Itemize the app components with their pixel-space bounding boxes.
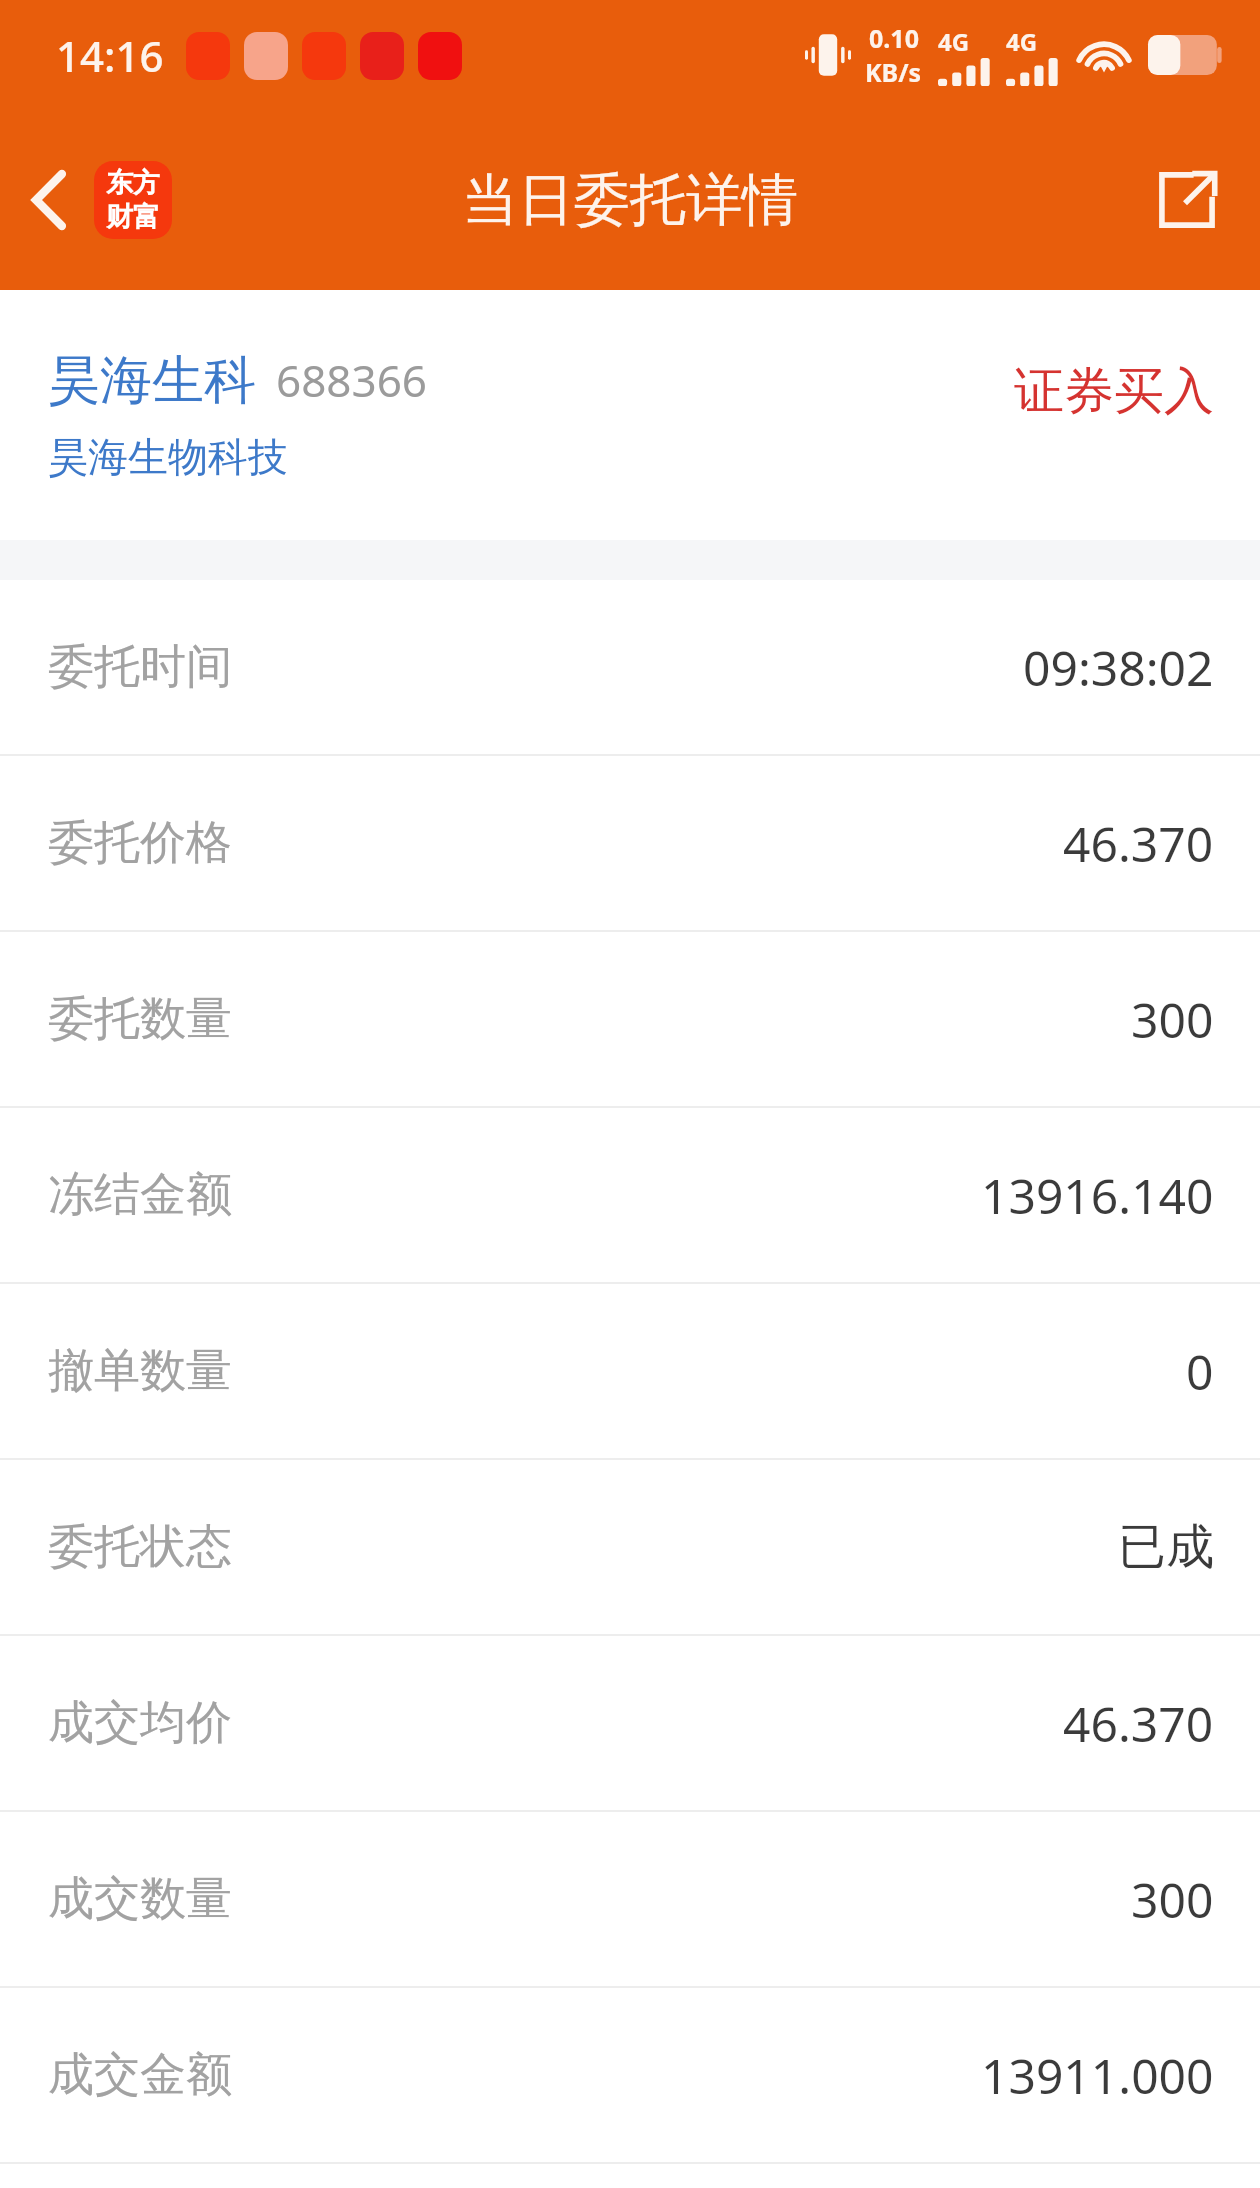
- staticText: 昊海生科: [48, 348, 256, 414]
- button[interactable]: Back: [0, 137, 190, 263]
- staticText: 09:38:02: [1023, 635, 1214, 700]
- staticText: 委托状态: [48, 1518, 232, 1576]
- staticText: 成交金额: [48, 2046, 232, 2104]
- staticText: 46.370: [1063, 1691, 1214, 1756]
- button[interactable]: 成交均价: [0, 1636, 1260, 1810]
- staticText: 4G: [1006, 25, 1038, 58]
- staticText: 撤单数量: [48, 1342, 232, 1400]
- staticText: 当日委托详情: [462, 165, 798, 236]
- button[interactable]: 冻结金额: [0, 1108, 1260, 1282]
- staticText: 证券买入: [1014, 360, 1214, 423]
- button[interactable]: Share: [1128, 141, 1260, 259]
- staticText: KB/s: [865, 55, 922, 89]
- button[interactable]: 委托时间: [0, 580, 1260, 754]
- staticText: 13911.000: [981, 2043, 1214, 2108]
- staticText: 300: [1131, 1867, 1214, 1932]
- staticText: 委托时间: [48, 638, 232, 696]
- staticText: 成交均价: [48, 1694, 232, 1752]
- staticText: 13916.140: [981, 1163, 1214, 1228]
- staticText: 已成: [1118, 1517, 1214, 1577]
- button[interactable]: 撤单数量: [0, 1284, 1260, 1458]
- staticText: 成交数量: [48, 1870, 232, 1928]
- staticText: 14:16: [56, 27, 164, 84]
- button[interactable]: 委托状态: [0, 1460, 1260, 1634]
- button[interactable]: 委托数量: [0, 932, 1260, 1106]
- staticText: 0: [1186, 1339, 1214, 1404]
- button[interactable]: 委托价格: [0, 756, 1260, 930]
- staticText: 昊海生物科技: [48, 432, 288, 482]
- button[interactable]: 成交金额: [0, 1988, 1260, 2162]
- button[interactable]: 成交数量: [0, 1812, 1260, 1986]
- button[interactable]: 昊海生科: [0, 290, 1260, 540]
- staticText: 300: [1131, 987, 1214, 1052]
- staticText: 0.10: [869, 21, 919, 55]
- staticText: 委托数量: [48, 990, 232, 1048]
- staticText: 财富: [106, 200, 160, 234]
- staticText: 冻结金额: [48, 1166, 232, 1224]
- staticText: 46.370: [1063, 811, 1214, 876]
- staticText: 委托价格: [48, 814, 232, 872]
- staticText: 688366: [276, 350, 428, 410]
- staticText: 4G: [938, 25, 970, 58]
- staticText: 东方: [106, 166, 160, 200]
